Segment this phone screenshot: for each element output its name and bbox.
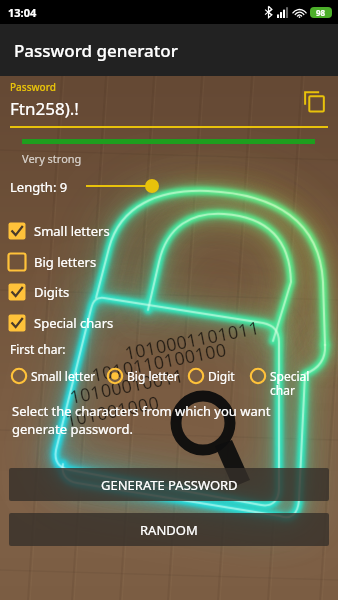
button[interactable]: Digits [6,279,70,305]
button[interactable]: Special chars [6,310,114,336]
staticText: First char: [10,341,66,357]
staticText: Big letter [127,368,189,384]
staticText: Password [10,80,56,94]
button[interactable]: Big letters [6,249,97,275]
button[interactable]: Big letter [106,367,189,385]
staticText: 1010001101011 [123,315,262,366]
staticText: 13:04 [8,5,37,20]
staticText: 101001000 [64,390,162,433]
staticText: 10100010011 [68,363,186,410]
staticText: Length: 9 [10,178,68,196]
button[interactable]: GENERATE PASSWORD [9,468,329,501]
button[interactable]: Copy password [302,88,328,114]
staticText: Digits [34,283,70,301]
button[interactable]: Small letter [10,367,103,385]
staticText: Very strong [22,151,82,166]
button[interactable]: Digit [187,367,244,385]
staticText: Special char [270,368,314,399]
button[interactable]: Special char [249,367,314,398]
staticText: Big letters [34,253,97,271]
staticText: Ftn258).! [10,97,79,120]
staticText: 98 [316,7,326,18]
staticText: Special chars [34,314,114,332]
staticText: GENERATE PASSWORD [101,476,238,494]
button[interactable]: Small letters [6,218,110,244]
staticText: 1010110100100 [90,337,229,388]
staticText: RANDOM [140,521,198,539]
staticText: Digit [208,368,244,384]
staticText: Select the characters from which you wan… [12,402,302,438]
staticText: Small letter [31,368,103,384]
staticText: Small letters [34,222,110,240]
button[interactable]: Length slider [80,176,330,196]
staticText: Password generator [14,39,178,62]
button[interactable]: RANDOM [9,513,329,546]
